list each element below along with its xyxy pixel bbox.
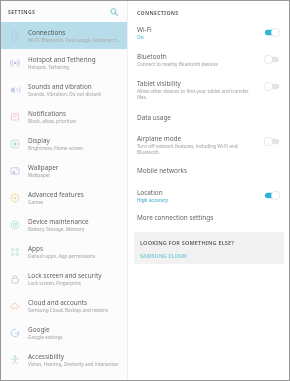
staticText: Wallpaper [28,163,59,172]
button[interactable]: Google [1,319,127,346]
button[interactable]: Mobile networks [128,166,289,188]
staticText: Data usage [137,113,171,122]
staticText: Wi-Fi [137,25,152,34]
staticText: Hotspot, Tethering [28,64,70,70]
button[interactable]: Wallpaper [1,157,127,184]
staticText: Bluetooth [137,52,167,61]
staticText: Connect to nearby Bluetooth devices [137,61,218,67]
staticText: Games [28,199,44,205]
staticText: Sounds and vibration [28,82,92,91]
staticText: High accuracy [137,197,168,203]
staticText: Lock screen and security [28,271,102,280]
staticText: Block, allow, prioritize [28,118,76,124]
button[interactable]: Location [128,188,289,213]
staticText: Allow other devices to find your tablet … [137,88,249,94]
staticText: CONNECTIONS [137,9,179,16]
staticText: Google [28,325,50,334]
staticText: Device maintenance [28,217,89,226]
button[interactable]: Tablet visibility [128,79,289,113]
staticText: Default apps, App permissions [28,253,96,259]
staticText: Turn off network features, including Wi-… [137,143,238,149]
button[interactable]: Turn on [264,134,281,148]
staticText: Lock screen, Fingerprint [28,280,81,286]
button[interactable]: More connection settings [128,213,289,232]
button[interactable]: Turn off [264,188,281,202]
staticText: Airplane mode [137,134,182,143]
button[interactable]: Airplane mode [128,134,289,166]
button[interactable]: Cloud and accounts [1,292,127,319]
button[interactable]: Sounds and vibration [1,76,127,103]
staticText: Wallpaper [28,172,51,178]
staticText: Apps [28,244,44,253]
staticText: Hotspot and Tethering [28,55,96,64]
button[interactable]: Connections [1,22,127,49]
staticText: LOOKING FOR SOMETHING ELSE? [140,239,235,247]
staticText: Sounds, Vibration, Do not disturb [28,91,102,97]
staticText: Connections [28,28,66,37]
staticText: Cloud and accounts [28,298,88,307]
staticText: files. [137,94,148,100]
button[interactable]: Device maintenance [1,211,127,238]
staticText: SETTINGS [8,8,36,15]
button[interactable]: Turn on [264,79,281,93]
button[interactable]: LOOKING FOR SOMETHING ELSE? [134,232,284,264]
staticText: Accessibility [28,352,65,361]
button[interactable]: Turn off [264,25,281,39]
staticText: Vision, Hearing, Dexterity and interacti… [28,361,119,367]
button[interactable]: Accessibility [1,346,127,373]
button[interactable]: Advanced features [1,184,127,211]
button[interactable]: Data usage [128,113,289,134]
staticText: Battery, Storage, Memory [28,226,85,232]
staticText: Brightness, Home screen [28,145,84,151]
staticText: Display [28,136,50,145]
button[interactable]: Display [1,130,127,157]
staticText: Mobile networks [137,166,188,175]
staticText: On [137,34,144,40]
button[interactable]: Search [107,5,120,18]
button[interactable]: Apps [1,238,127,265]
button[interactable]: Notifications [1,103,127,130]
button[interactable]: Turn on [264,52,281,66]
staticText: Bluetooth. [137,149,161,155]
button[interactable]: Bluetooth [128,52,289,79]
staticText: Samsung Cloud, Backup and restore [28,307,108,313]
staticText: Tablet visibility [137,79,181,88]
button[interactable]: Lock screen and security [1,265,127,292]
button[interactable]: Hotspot and Tethering [1,49,127,76]
button[interactable]: Wi-Fi [128,25,289,52]
staticText: Notifications [28,109,67,118]
staticText: Google settings [28,334,63,340]
staticText: Location [137,188,163,197]
staticText: Advanced features [28,190,84,199]
staticText: More connection settings [137,213,214,222]
staticText: Wi-Fi, Bluetooth, Data usage, Airplane m… [28,37,121,43]
staticText: SAMSUNG CLOUD [140,252,187,259]
